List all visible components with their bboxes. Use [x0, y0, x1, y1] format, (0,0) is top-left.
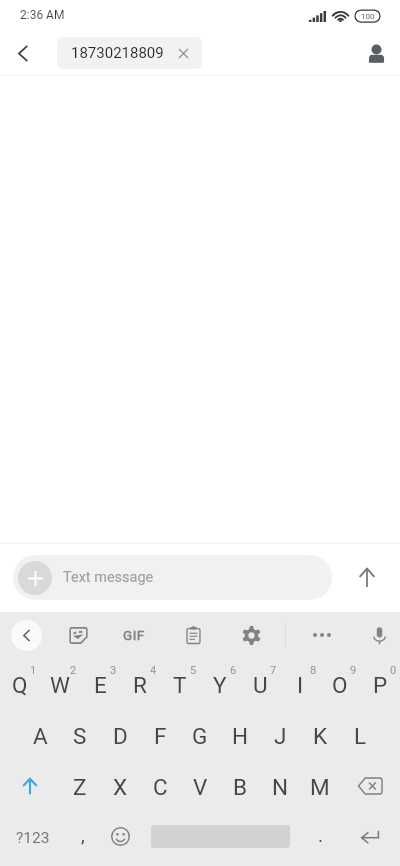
staticText: 5 — [190, 664, 197, 677]
button[interactable]: G — [180, 709, 220, 760]
staticText: 2 — [70, 664, 77, 677]
staticText: M — [310, 774, 330, 800]
staticText: X — [113, 774, 128, 800]
button[interactable]: Z — [60, 760, 100, 811]
button[interactable]: Enter — [340, 811, 400, 862]
staticText: I — [297, 672, 304, 698]
staticText: J — [274, 723, 287, 749]
staticText: C — [153, 774, 168, 800]
staticText: 100 — [361, 12, 375, 21]
button[interactable]: Contact details — [352, 30, 400, 76]
button[interactable]: L — [340, 709, 380, 760]
staticText: Z — [73, 774, 87, 800]
button[interactable]: E — [80, 658, 120, 709]
button[interactable]: I — [280, 658, 320, 709]
button[interactable]: Collapse toolbar — [11, 620, 42, 651]
staticText: N — [272, 774, 289, 800]
button[interactable]: Backspace — [340, 760, 400, 811]
staticText: D — [113, 723, 128, 749]
button[interactable]: Back — [0, 30, 46, 76]
button[interactable]: U — [240, 658, 280, 709]
button[interactable]: Y — [200, 658, 240, 709]
staticText: , — [81, 824, 85, 846]
staticText: S — [73, 723, 87, 749]
staticText: 8 — [310, 664, 317, 677]
staticText: G — [192, 723, 208, 749]
staticText: E — [94, 672, 107, 698]
staticText: Y — [213, 672, 227, 698]
staticText: K — [313, 723, 328, 749]
staticText: B — [233, 774, 248, 800]
button[interactable]: D — [100, 709, 140, 760]
staticText: 7 — [270, 664, 277, 677]
button[interactable]: T — [160, 658, 200, 709]
staticText: T — [173, 672, 187, 698]
button[interactable]: J — [260, 709, 300, 760]
button[interactable]: H — [220, 709, 260, 760]
staticText: 18730218809 — [71, 44, 164, 62]
staticText: V — [193, 774, 208, 800]
button[interactable]: Emoji — [101, 811, 139, 862]
staticText: 4 — [150, 664, 157, 677]
staticText: H — [232, 723, 249, 749]
button[interactable]: Clipboard — [173, 615, 213, 655]
button[interactable]: S — [60, 709, 100, 760]
button[interactable]: More options — [302, 615, 342, 655]
staticText: R — [133, 672, 147, 698]
button[interactable]: N — [260, 760, 300, 811]
button[interactable]: Send — [344, 555, 389, 600]
button[interactable]: C — [140, 760, 180, 811]
button[interactable]: Voice input — [359, 615, 399, 655]
staticText: F — [154, 723, 167, 749]
staticText: A — [33, 723, 48, 749]
button[interactable]: O — [320, 658, 360, 709]
button[interactable]: ?123 — [0, 811, 65, 862]
staticText: O — [332, 672, 348, 698]
staticText: ?123 — [16, 829, 50, 847]
button[interactable]: 18730218809 — [57, 37, 202, 69]
staticText: U — [253, 672, 268, 698]
button[interactable]: V — [180, 760, 220, 811]
button[interactable]: X — [100, 760, 140, 811]
button[interactable]: A — [20, 709, 60, 760]
button[interactable]: . — [302, 811, 340, 862]
button[interactable]: W — [40, 658, 80, 709]
staticText: P — [373, 672, 388, 698]
staticText: Text message — [63, 569, 154, 586]
button[interactable]: R — [120, 658, 160, 709]
button[interactable]: GIF — [114, 615, 154, 655]
staticText: W — [50, 672, 70, 698]
button[interactable]: B — [220, 760, 260, 811]
staticText: GIF — [123, 627, 145, 643]
staticText: 9 — [350, 664, 357, 677]
button[interactable]: P — [360, 658, 400, 709]
button[interactable]: Stickers — [58, 615, 98, 655]
button[interactable]: K — [300, 709, 340, 760]
button[interactable]: M — [300, 760, 340, 811]
button[interactable]: Q — [0, 658, 40, 709]
staticText: . — [318, 824, 324, 846]
button[interactable]: , — [65, 811, 101, 862]
staticText: 0 — [390, 664, 397, 677]
button[interactable]: Text message — [13, 555, 332, 600]
button[interactable]: Shift — [0, 760, 60, 811]
staticText: 6 — [230, 664, 237, 677]
button[interactable]: Settings — [231, 615, 271, 655]
staticText: Q — [12, 672, 28, 698]
staticText: L — [354, 723, 367, 749]
staticText: 3 — [110, 664, 117, 677]
staticText: 2:36 AM — [20, 8, 65, 22]
button[interactable]: F — [140, 709, 180, 760]
staticText: 1 — [30, 664, 37, 677]
